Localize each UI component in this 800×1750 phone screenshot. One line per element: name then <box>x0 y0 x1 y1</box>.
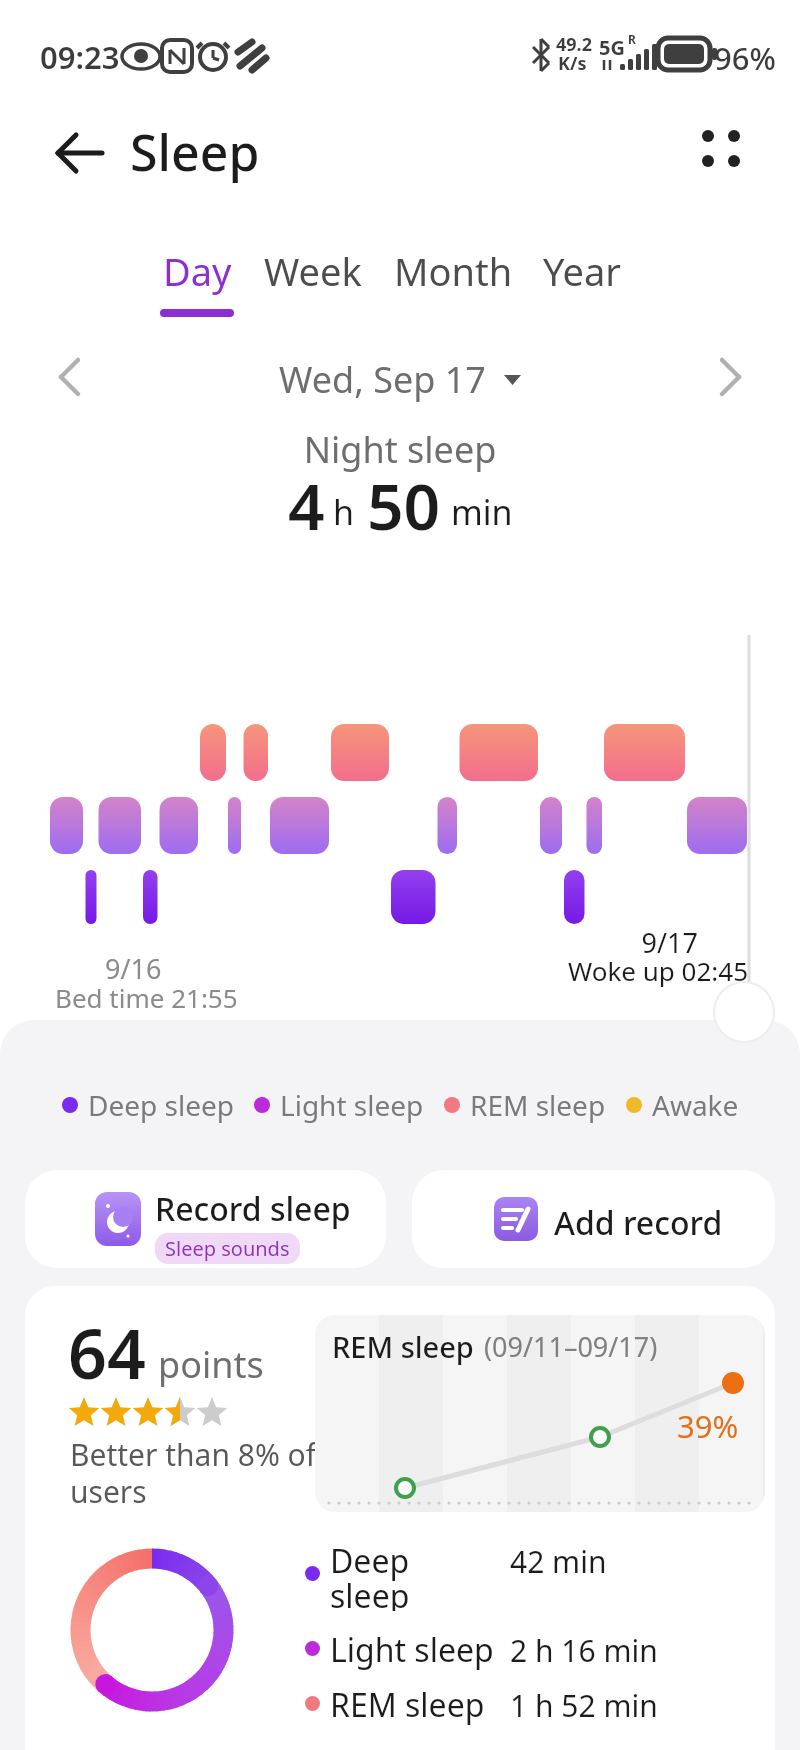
staticText: 1 h 52 min <box>510 1685 658 1726</box>
staticText: Bed time 21:55 <box>55 980 238 1015</box>
staticText: Add record <box>554 1201 723 1245</box>
staticText: 39% <box>677 1405 739 1447</box>
staticText: (09/11–09/17) <box>484 1328 658 1365</box>
staticText: Woke up 02:45 <box>480 953 748 988</box>
staticText: Record sleep <box>155 1187 351 1231</box>
button[interactable]: Add record <box>412 1170 775 1268</box>
staticText: Sleep sounds <box>165 1235 290 1262</box>
staticText: 09:23 <box>40 36 120 78</box>
button[interactable]: Month <box>394 245 513 297</box>
button[interactable]: Record sleep <box>25 1170 386 1268</box>
staticText: 64 <box>68 1306 146 1399</box>
staticText: 49.2 <box>556 32 592 57</box>
staticText: 9/16 <box>105 950 162 987</box>
button[interactable] <box>715 983 773 1041</box>
staticText: Night sleep <box>0 425 800 474</box>
staticText: Day <box>163 245 232 297</box>
staticText: min <box>451 489 513 535</box>
staticText: points <box>158 1340 264 1389</box>
staticText: 96% <box>714 37 776 79</box>
staticText: REM sleep <box>332 1327 474 1366</box>
staticText: 42 min <box>510 1541 607 1582</box>
staticText: REM sleep <box>470 1086 606 1124</box>
staticText: 2 h 16 min <box>510 1630 658 1671</box>
button[interactable]: Wed, Sep 17 <box>279 355 486 404</box>
staticText: Sleep <box>130 118 260 186</box>
staticText: 50 <box>367 462 441 542</box>
staticText: Light sleep <box>330 1628 494 1672</box>
button[interactable]: Year <box>543 245 622 297</box>
staticText: 5G <box>599 34 625 61</box>
staticText: 4 <box>288 462 325 542</box>
staticText: Awake <box>652 1086 739 1124</box>
button[interactable] <box>705 352 755 402</box>
staticText: Better than 8% of users <box>70 1434 317 1512</box>
staticText: Deep sleep <box>88 1086 234 1124</box>
staticText: Light sleep <box>280 1086 424 1124</box>
staticText: 9/17 <box>510 924 698 961</box>
staticText: Deep sleep <box>330 1539 410 1611</box>
button[interactable]: Week <box>264 245 362 297</box>
staticText: R <box>628 31 636 47</box>
staticText: h <box>333 489 355 535</box>
button[interactable] <box>40 125 110 181</box>
staticText: K/s <box>558 51 587 76</box>
button[interactable] <box>45 352 95 402</box>
button[interactable]: Day <box>160 245 234 317</box>
staticText: REM sleep <box>330 1683 485 1727</box>
button[interactable] <box>690 120 752 180</box>
